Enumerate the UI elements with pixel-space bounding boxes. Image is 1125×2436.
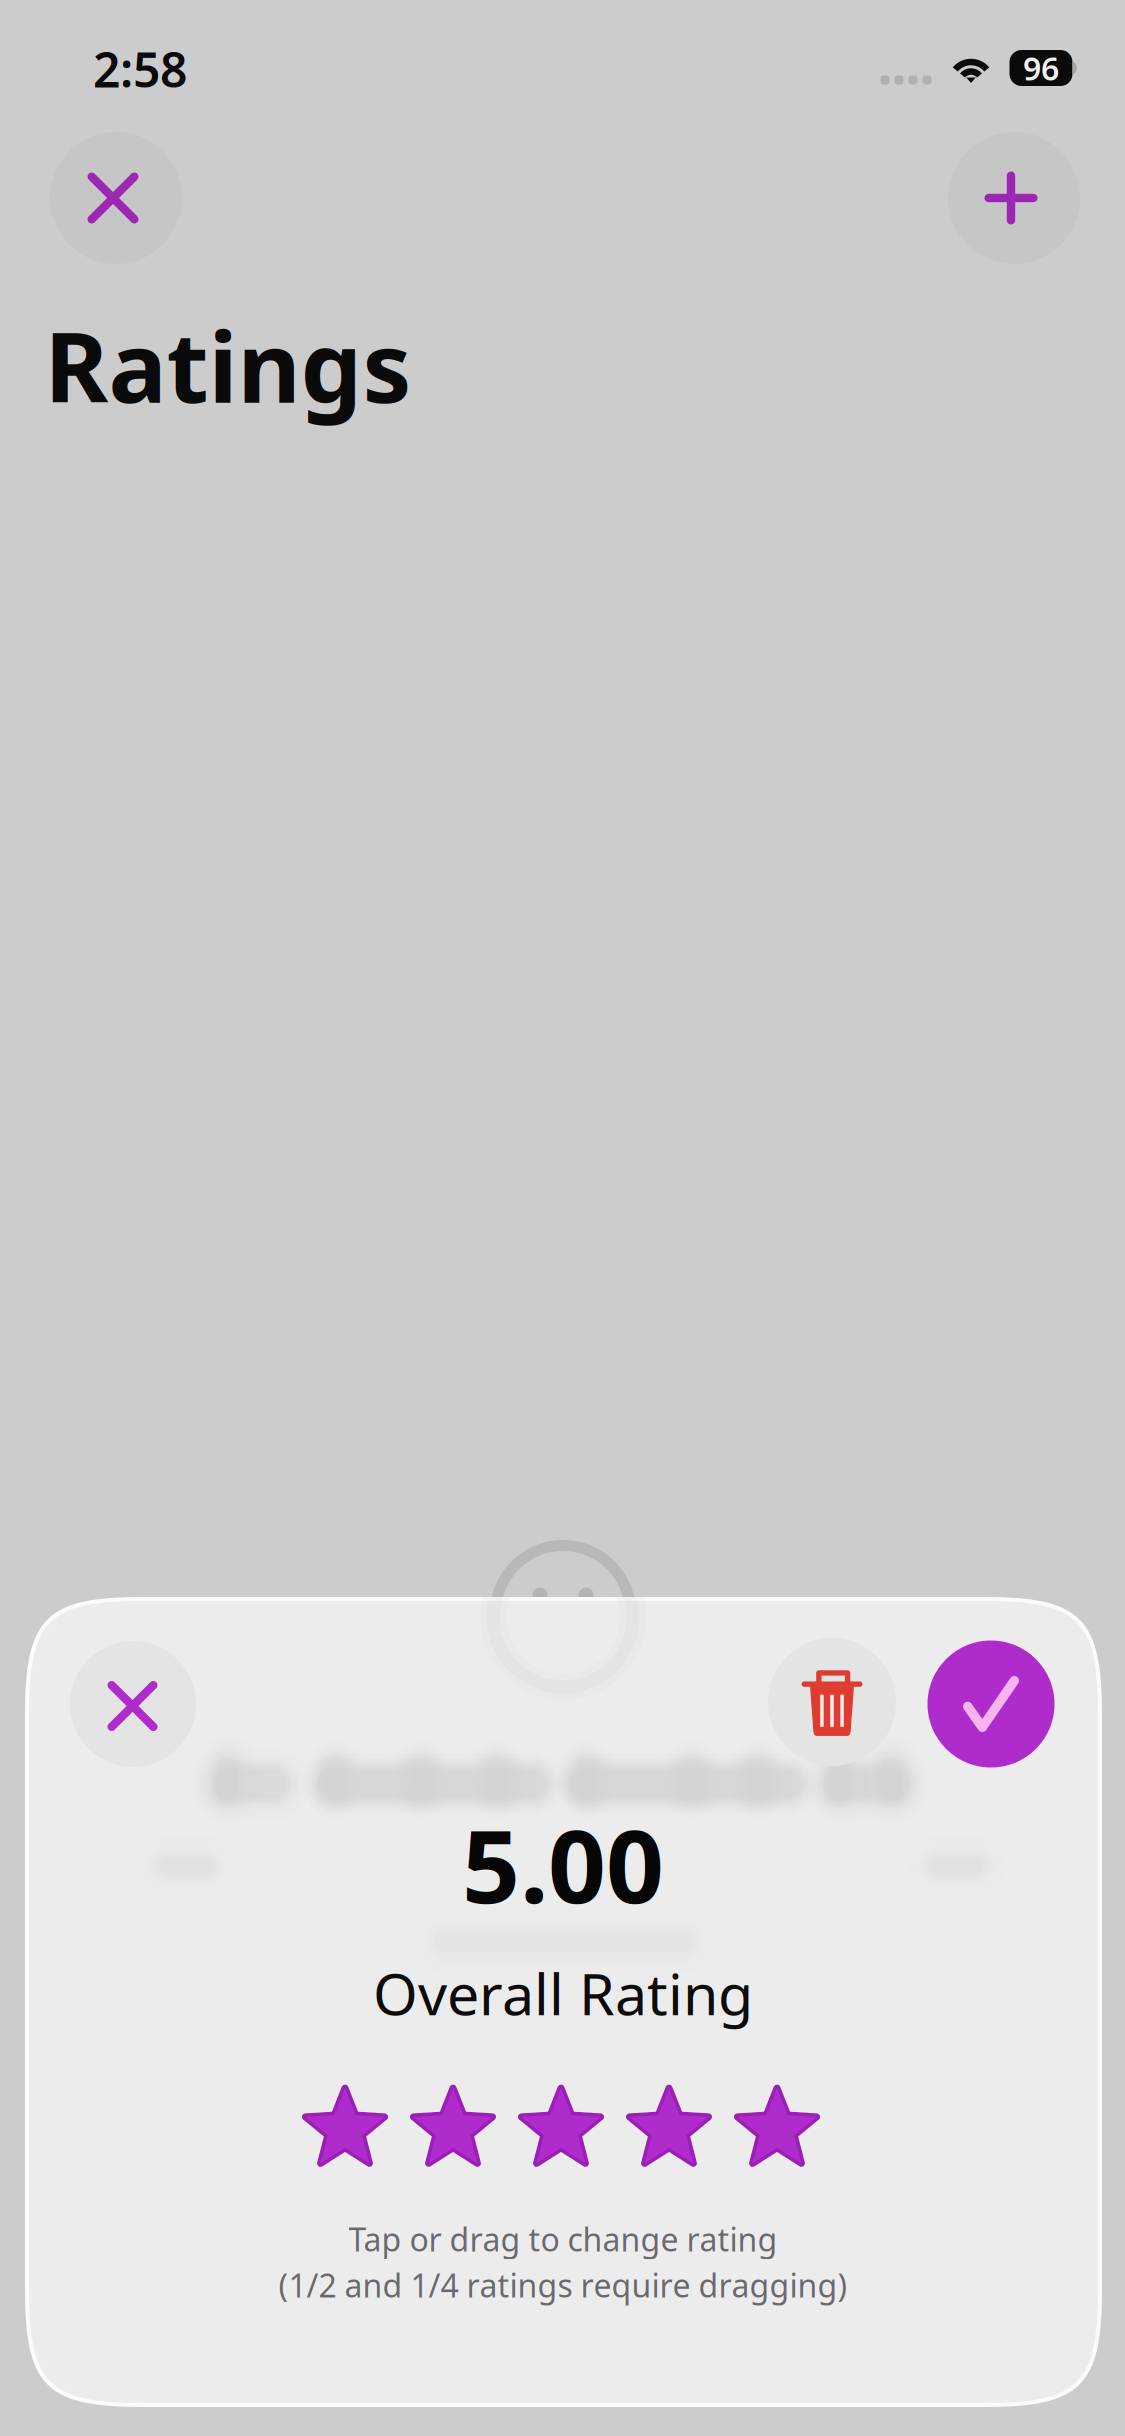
button[interactable]: Rating, 5 out of 5 stars <box>305 2085 816 2167</box>
button[interactable]: Add <box>948 132 1080 264</box>
staticText: (1/2 and 1/4 ratings require dragging) <box>278 2264 847 2306</box>
staticText: Tap or drag to change rating <box>348 2218 777 2260</box>
button[interactable]: Delete <box>768 1638 896 1766</box>
staticText: 2:58 <box>93 37 187 101</box>
button[interactable]: Close <box>50 132 182 264</box>
button[interactable]: Confirm <box>927 1640 1054 1767</box>
staticText: Overall Rating <box>373 1955 753 2031</box>
staticText: Ratings <box>44 300 411 430</box>
staticText: 5.00 <box>462 1797 664 1931</box>
button[interactable]: Close <box>70 1641 196 1767</box>
staticText: 96 <box>1023 47 1059 89</box>
